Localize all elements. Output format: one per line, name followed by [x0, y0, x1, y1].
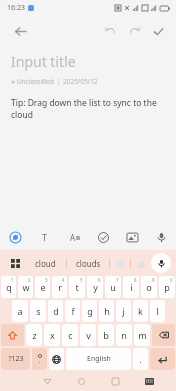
staticText: A — [70, 232, 76, 243]
staticText: a — [17, 305, 23, 317]
staticText: , — [39, 358, 41, 365]
staticText: c — [68, 329, 73, 341]
staticText: l — [156, 305, 159, 317]
staticText: clouds — [76, 258, 101, 269]
staticText: f — [71, 305, 75, 317]
staticText: Unclassified — [17, 77, 54, 86]
staticText: i — [130, 281, 133, 293]
button[interactable]: Change language — [49, 348, 64, 370]
button[interactable]: Recents — [98, 372, 132, 391]
staticText: o — [146, 281, 152, 293]
button[interactable]: Backspace — [152, 324, 175, 346]
staticText: y — [93, 281, 98, 293]
button[interactable]: Keyboard menu — [5, 253, 25, 273]
staticText: t — [75, 281, 79, 293]
button[interactable]: m — [134, 324, 150, 346]
staticText: Input title — [11, 52, 76, 71]
staticText: p — [164, 281, 170, 293]
button[interactable]: , — [32, 348, 47, 370]
staticText: m — [138, 329, 147, 341]
staticText: w — [22, 281, 30, 293]
button[interactable]: Text style — [30, 224, 60, 250]
button[interactable]: j — [116, 300, 131, 322]
button[interactable]: i — [123, 276, 139, 298]
staticText: h — [104, 305, 110, 317]
button[interactable]: Enter — [150, 348, 175, 370]
button[interactable]: English — [66, 348, 131, 370]
button[interactable]: ?123 — [1, 348, 30, 370]
button[interactable]: Rain emoji — [131, 250, 151, 276]
staticText: g — [87, 305, 93, 317]
button[interactable]: d — [48, 300, 63, 322]
button[interactable]: Cloud emoji — [110, 250, 130, 276]
staticText: 1 — [11, 277, 14, 283]
staticText: q — [6, 281, 12, 293]
button[interactable]: c — [62, 324, 78, 346]
button[interactable]: n — [116, 324, 132, 346]
staticText: r — [58, 281, 62, 293]
button[interactable]: b — [98, 324, 114, 346]
staticText: s — [36, 305, 41, 317]
button[interactable]: z — [26, 324, 42, 346]
button[interactable]: Back — [8, 19, 32, 43]
button[interactable]: Back — [30, 372, 64, 391]
staticText: 9 — [152, 277, 155, 283]
button[interactable]: Voice input — [147, 224, 176, 250]
staticText: 2 — [28, 277, 31, 283]
staticText: ?123 — [8, 354, 24, 364]
staticText: 7 — [116, 277, 119, 283]
button[interactable]: Home — [64, 372, 98, 391]
button[interactable]: a — [12, 300, 28, 322]
button[interactable]: u — [105, 276, 121, 298]
button[interactable]: cloud — [25, 250, 66, 276]
staticText: e — [40, 281, 46, 293]
button[interactable]: clouds — [67, 250, 109, 276]
button[interactable]: Shift — [1, 324, 24, 346]
button[interactable]: w — [18, 276, 33, 298]
button[interactable]: f — [65, 300, 80, 322]
staticText: 8 — [134, 277, 137, 283]
staticText: 3 — [45, 277, 48, 283]
staticText: 0 — [170, 277, 173, 283]
staticText: k — [138, 305, 143, 317]
button[interactable]: Checklist — [89, 224, 118, 250]
button[interactable]: o — [141, 276, 157, 298]
staticText: b — [103, 329, 109, 341]
button[interactable]: Done — [146, 19, 170, 43]
button[interactable]: y — [87, 276, 103, 298]
staticText: d — [53, 305, 59, 317]
button[interactable]: t — [69, 276, 85, 298]
button[interactable]: h — [99, 300, 114, 322]
staticText: u — [110, 281, 116, 293]
button[interactable]: Voice input — [151, 253, 171, 273]
staticText: 5 — [80, 277, 83, 283]
button[interactable]: q — [1, 276, 16, 298]
button[interactable]: s — [30, 300, 46, 322]
button[interactable]: Redo — [122, 19, 146, 43]
button[interactable]: Draw — [0, 224, 30, 250]
staticText: 16:23 — [7, 3, 25, 13]
staticText: z — [32, 329, 37, 341]
button[interactable]: p — [159, 276, 175, 298]
staticText: 4 — [62, 277, 65, 283]
button[interactable]: v — [80, 324, 96, 346]
staticText: Tip: Drag down the list to sync to the c… — [11, 97, 165, 121]
button[interactable]: e — [35, 276, 50, 298]
button[interactable]: . — [133, 348, 148, 370]
staticText: n — [121, 329, 127, 341]
button[interactable]: Hide keyboard — [132, 372, 166, 391]
button[interactable]: x — [44, 324, 60, 346]
staticText: cloud — [35, 258, 56, 269]
button[interactable]: l — [150, 300, 165, 322]
staticText: 2025/05/12 — [63, 77, 98, 86]
button[interactable]: k — [133, 300, 148, 322]
staticText: 6 — [98, 277, 101, 283]
staticText: x — [50, 329, 55, 341]
button[interactable]: Undo — [98, 19, 122, 43]
button[interactable]: r — [52, 276, 67, 298]
staticText: . — [139, 354, 142, 365]
button[interactable]: Insert image — [118, 224, 147, 250]
button[interactable]: g — [82, 300, 97, 322]
button[interactable]: Format — [60, 224, 89, 250]
staticText: T — [42, 231, 48, 243]
